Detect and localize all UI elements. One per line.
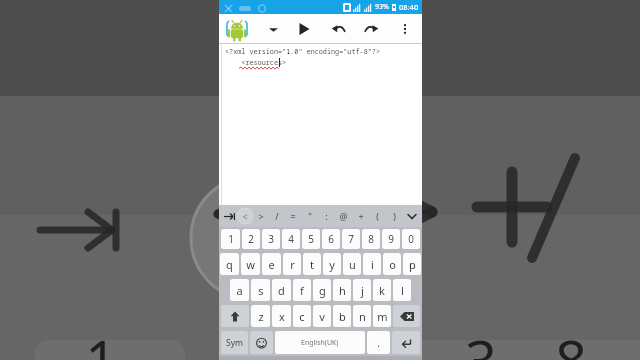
staticText: k bbox=[379, 283, 385, 298]
staticText: 2 bbox=[248, 232, 254, 246]
button[interactable]: Redo bbox=[359, 16, 385, 42]
staticText: g bbox=[319, 283, 326, 298]
staticText: . bbox=[377, 336, 380, 350]
staticText: o bbox=[389, 257, 396, 272]
button[interactable]: t bbox=[303, 253, 321, 275]
staticText: 8 bbox=[368, 232, 374, 246]
staticText: 7 bbox=[348, 232, 354, 246]
staticText: : bbox=[325, 210, 328, 222]
button[interactable]: Run bbox=[291, 16, 317, 42]
button[interactable]: AIDE app bbox=[225, 17, 249, 41]
button[interactable]: 7 bbox=[342, 229, 360, 249]
button[interactable]: 9 bbox=[382, 229, 400, 249]
button[interactable]: b bbox=[333, 305, 351, 327]
staticText: 1 bbox=[85, 322, 118, 360]
button[interactable]: p bbox=[403, 253, 421, 275]
button[interactable]: 2 bbox=[242, 229, 260, 249]
button[interactable]: Key > bbox=[253, 205, 269, 227]
button[interactable]: l bbox=[393, 279, 411, 301]
button[interactable]: u bbox=[343, 253, 361, 275]
button[interactable]: e bbox=[262, 253, 281, 275]
staticText: 9 bbox=[388, 232, 394, 246]
staticText: Sym bbox=[226, 337, 243, 349]
button[interactable]: 0 bbox=[402, 229, 420, 249]
staticText: x bbox=[279, 309, 285, 324]
button[interactable]: 6 bbox=[322, 229, 340, 249]
button[interactable]: j bbox=[353, 279, 371, 301]
button[interactable]: i bbox=[363, 253, 381, 275]
staticText: 3 bbox=[465, 322, 498, 360]
staticText: 6 bbox=[328, 232, 334, 246]
button[interactable]: Select configuration bbox=[263, 19, 283, 39]
button[interactable]: English(UK) bbox=[275, 331, 365, 354]
staticText: English(UK) bbox=[301, 338, 339, 348]
button[interactable]: w bbox=[241, 253, 260, 275]
staticText: a bbox=[236, 283, 243, 298]
button[interactable]: o bbox=[383, 253, 401, 275]
button[interactable]: Key " bbox=[301, 205, 318, 227]
staticText: b bbox=[339, 309, 346, 324]
staticText: n bbox=[359, 309, 366, 324]
button[interactable]: c bbox=[293, 305, 311, 327]
button[interactable]: z bbox=[251, 305, 270, 327]
staticText: = bbox=[290, 210, 296, 222]
staticText: / bbox=[275, 210, 279, 222]
staticText: e bbox=[268, 257, 275, 272]
button[interactable]: 5 bbox=[302, 229, 320, 249]
button[interactable]: Backspace bbox=[393, 305, 420, 327]
staticText: 08:40 bbox=[399, 2, 419, 12]
staticText: ) bbox=[393, 210, 396, 222]
button[interactable]: f bbox=[293, 279, 311, 301]
button[interactable]: n bbox=[353, 305, 371, 327]
button[interactable]: Key < bbox=[237, 205, 253, 227]
staticText: q bbox=[226, 257, 233, 272]
button[interactable]: s bbox=[251, 279, 270, 301]
button[interactable]: d bbox=[272, 279, 291, 301]
staticText: " bbox=[308, 210, 312, 222]
button[interactable]: g bbox=[313, 279, 331, 301]
button[interactable]: r bbox=[283, 253, 301, 275]
button[interactable]: Key : bbox=[318, 205, 335, 227]
staticText: 1 bbox=[228, 232, 234, 246]
button[interactable]: Sym bbox=[221, 331, 248, 354]
button[interactable]: <?xml version="1.0" encoding="utf-8"?> bbox=[219, 44, 422, 205]
button[interactable]: 1 bbox=[221, 229, 240, 249]
button[interactable]: Shift bbox=[221, 305, 249, 327]
button[interactable]: v bbox=[313, 305, 331, 327]
staticText: d bbox=[278, 283, 285, 298]
button[interactable]: Key →| bbox=[221, 205, 237, 227]
button[interactable]: h bbox=[333, 279, 351, 301]
staticText: <resources> bbox=[225, 58, 287, 67]
staticText: w bbox=[246, 257, 255, 272]
button[interactable]: Key ( bbox=[369, 205, 386, 227]
staticText: 5 bbox=[308, 232, 314, 246]
button[interactable]: 4 bbox=[282, 229, 300, 249]
button[interactable]: Key = bbox=[285, 205, 301, 227]
button[interactable]: Key v bbox=[403, 205, 420, 227]
staticText: + bbox=[358, 210, 364, 222]
staticText: v bbox=[319, 309, 325, 324]
staticText: i bbox=[371, 257, 374, 272]
button[interactable]: m bbox=[373, 305, 391, 327]
staticText: 2 bbox=[275, 322, 308, 360]
button[interactable]: Key @ bbox=[335, 205, 352, 227]
button[interactable]: 3 bbox=[262, 229, 280, 249]
button[interactable]: q bbox=[220, 253, 239, 275]
staticText: m bbox=[377, 309, 388, 324]
button[interactable]: k bbox=[373, 279, 391, 301]
staticText: y bbox=[329, 257, 335, 272]
button[interactable]: Key + bbox=[352, 205, 369, 227]
staticText: 3 bbox=[268, 232, 274, 246]
button[interactable]: Key / bbox=[269, 205, 285, 227]
button[interactable]: Enter bbox=[392, 331, 420, 354]
button[interactable]: x bbox=[272, 305, 291, 327]
button[interactable]: a bbox=[230, 279, 249, 301]
button[interactable]: Emoji bbox=[250, 331, 273, 354]
button[interactable]: Key ) bbox=[386, 205, 403, 227]
button[interactable]: . bbox=[367, 331, 390, 354]
button[interactable]: More options bbox=[393, 17, 417, 41]
button[interactable]: 8 bbox=[362, 229, 380, 249]
staticText: j bbox=[361, 283, 364, 298]
button[interactable]: y bbox=[323, 253, 341, 275]
button[interactable]: Undo bbox=[325, 16, 351, 42]
